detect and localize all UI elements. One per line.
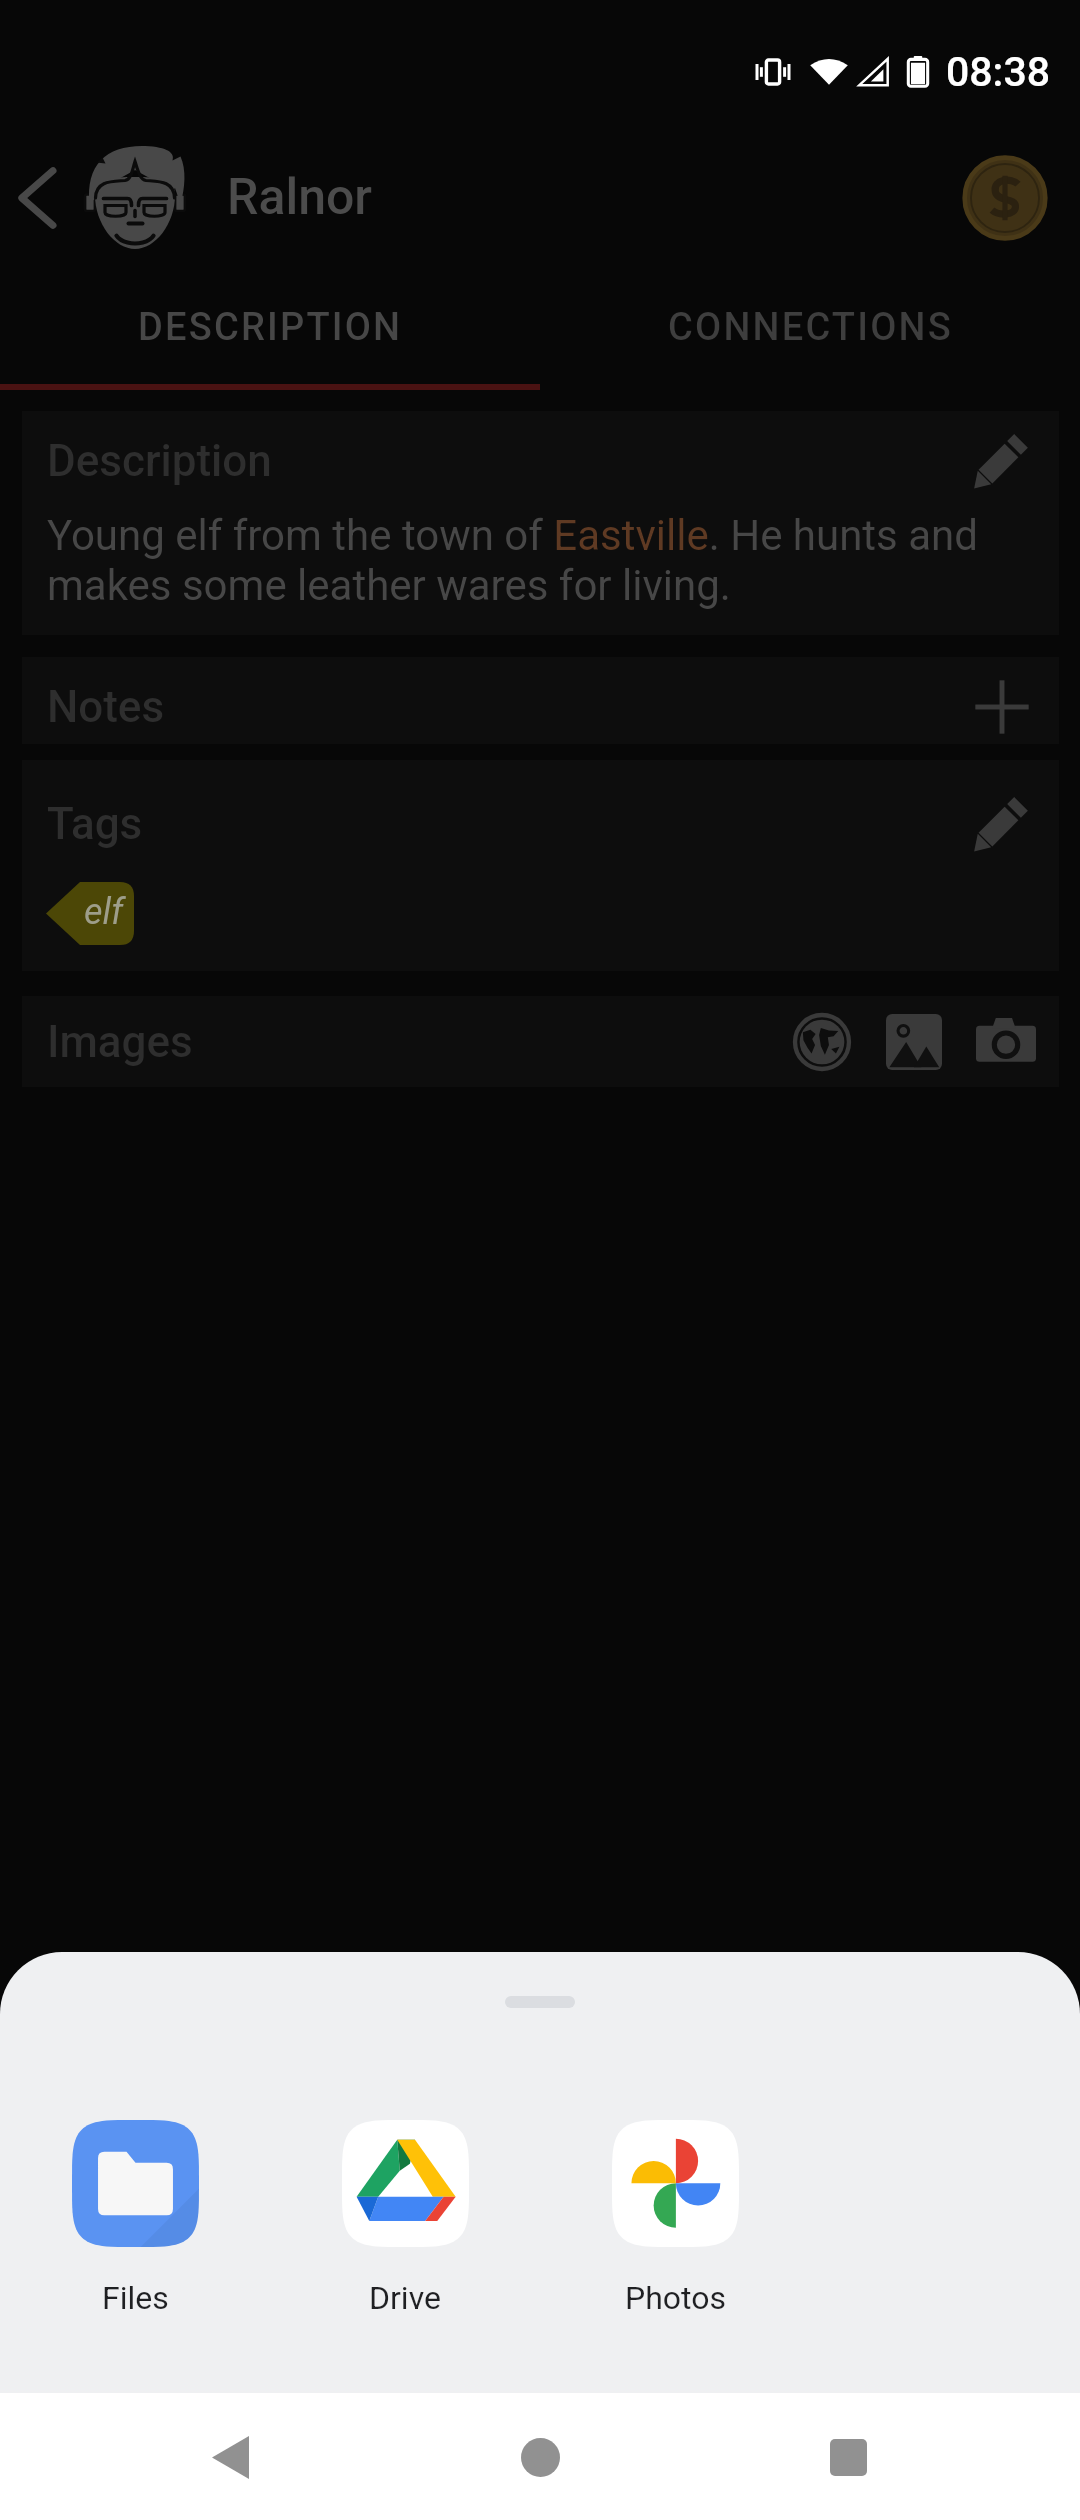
button[interactable]: Take photo <box>961 997 1051 1087</box>
staticText: Drive <box>369 2279 441 2317</box>
staticText: Files <box>102 2279 169 2317</box>
staticText: Tags <box>47 798 143 850</box>
button[interactable]: Back <box>0 161 74 235</box>
staticText: Young elf from the town of Eastville. He… <box>47 511 1037 610</box>
button[interactable]: Home <box>480 2397 600 2517</box>
staticText: Images <box>47 1016 193 1068</box>
staticText: CONNECTIONS <box>668 305 953 350</box>
button[interactable]: Files <box>44 2120 226 2317</box>
staticText: 08:38 <box>946 48 1051 96</box>
button[interactable]: Currency <box>950 143 1060 253</box>
staticText: Description <box>47 435 272 487</box>
staticText: Ralnor <box>227 168 373 227</box>
staticText: Photos <box>625 2279 726 2317</box>
button[interactable]: DESCRIPTION <box>0 270 540 384</box>
button[interactable]: CONNECTIONS <box>540 270 1080 384</box>
button[interactable]: Edit description <box>951 411 1051 511</box>
button[interactable]: Photos <box>584 2120 766 2317</box>
button[interactable]: Back <box>170 2397 290 2517</box>
staticText: elf <box>84 891 124 933</box>
button[interactable]: Recent apps <box>788 2397 908 2517</box>
staticText: DESCRIPTION <box>138 305 403 350</box>
button[interactable]: Add note <box>953 663 1051 750</box>
staticText: Notes <box>47 681 165 733</box>
button[interactable]: Pick from gallery <box>869 997 959 1087</box>
button[interactable]: elf <box>46 882 134 945</box>
button[interactable]: Search web images <box>777 997 867 1087</box>
button[interactable]: Edit tags <box>951 774 1051 874</box>
button[interactable]: Drive <box>314 2120 496 2317</box>
